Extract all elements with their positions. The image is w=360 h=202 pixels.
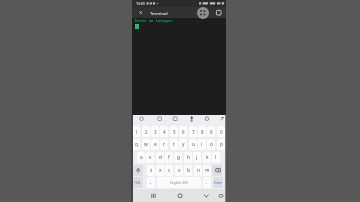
button[interactable] (173, 189, 187, 202)
button[interactable]: u (189, 139, 197, 150)
button[interactable]: . (203, 177, 211, 188)
staticText: f (168, 154, 170, 161)
button[interactable]: 1 (132, 126, 140, 137)
button[interactable] (146, 189, 160, 202)
staticText: 9 (210, 129, 213, 135)
staticText: g (177, 154, 180, 161)
button[interactable]: t (170, 139, 178, 150)
staticText: 7 (192, 129, 195, 135)
staticText: s (149, 154, 152, 161)
button[interactable] (216, 10, 222, 16)
button[interactable] (197, 7, 209, 19)
button[interactable]: 5 (170, 126, 178, 137)
staticText: e (154, 141, 157, 148)
button[interactable]: k (203, 152, 211, 163)
button[interactable]: p (217, 139, 225, 150)
button[interactable]: c (165, 165, 173, 176)
button[interactable]: 7 (189, 126, 197, 137)
staticText: English (US) (170, 181, 188, 185)
button[interactable]: x (156, 165, 164, 176)
staticText: d (159, 154, 162, 161)
button[interactable]: m (203, 165, 211, 176)
button[interactable]: e (151, 139, 159, 150)
button[interactable]: 4 (160, 126, 168, 137)
button[interactable]: a (137, 152, 145, 163)
button[interactable] (199, 189, 213, 202)
button[interactable]: q (132, 139, 140, 150)
staticText: 0 (220, 129, 223, 135)
staticText: k (206, 154, 209, 161)
button[interactable]: f (165, 152, 173, 163)
staticText: p (220, 141, 223, 148)
staticText: y (182, 141, 185, 148)
staticText: t (173, 141, 175, 148)
button[interactable] (212, 165, 222, 176)
button[interactable]: ✕ (139, 10, 143, 15)
staticText: ?123 (134, 181, 141, 185)
staticText: Enter an integer: (135, 18, 174, 23)
staticText: 6 (182, 129, 185, 135)
button[interactable]: 2 (142, 126, 150, 137)
staticText: 4 (163, 129, 166, 135)
staticText: a (140, 154, 143, 161)
button[interactable]: r (160, 139, 168, 150)
button[interactable] (132, 165, 143, 176)
button[interactable]: d (156, 152, 164, 163)
staticText: q (135, 141, 138, 148)
staticText: Enter (214, 181, 223, 185)
button[interactable]: n (194, 165, 202, 176)
staticText: o (210, 141, 213, 148)
button[interactable]: o (207, 139, 215, 150)
staticText: , (150, 179, 152, 186)
staticText: 8 (201, 129, 204, 135)
button[interactable]: i (198, 139, 206, 150)
staticText: b (187, 167, 190, 174)
button[interactable]: English (US) (157, 177, 201, 188)
staticText: v (178, 167, 181, 174)
button[interactable]: ?123 (132, 177, 143, 188)
staticText: 3 (154, 129, 157, 135)
button[interactable]: g (174, 152, 182, 163)
staticText: 2 (145, 129, 148, 135)
staticText: Terminal (150, 10, 168, 16)
staticText: l (215, 154, 217, 161)
staticText: 1 (135, 129, 138, 135)
staticText: n (197, 167, 200, 174)
staticText: c (168, 167, 171, 174)
button[interactable]: l (212, 152, 220, 163)
button[interactable]: h (184, 152, 192, 163)
staticText: u (192, 141, 195, 148)
staticText: j (196, 154, 198, 161)
staticText: h (187, 154, 190, 161)
button[interactable]: 8 (198, 126, 206, 137)
button[interactable]: Enter (213, 177, 223, 188)
button[interactable]: v (175, 165, 183, 176)
staticText: w (144, 141, 148, 148)
staticText: z (150, 167, 153, 174)
button[interactable]: j (193, 152, 201, 163)
button[interactable]: s (146, 152, 154, 163)
button[interactable]: w (142, 139, 150, 150)
button[interactable]: 3 (151, 126, 159, 137)
button[interactable]: z (147, 165, 155, 176)
staticText: 5 (173, 129, 176, 135)
button[interactable]: y (179, 139, 187, 150)
button[interactable]: 6 (179, 126, 187, 137)
button[interactable]: 0 (217, 126, 225, 137)
staticText: r (163, 141, 165, 148)
staticText: i (201, 141, 203, 148)
button[interactable]: , (147, 177, 155, 188)
staticText: m (205, 167, 210, 174)
staticText: . (206, 179, 208, 186)
button[interactable]: 9 (207, 126, 215, 137)
staticText: x (159, 167, 162, 174)
button[interactable]: b (184, 165, 192, 176)
staticText: 13:05 (136, 1, 145, 6)
